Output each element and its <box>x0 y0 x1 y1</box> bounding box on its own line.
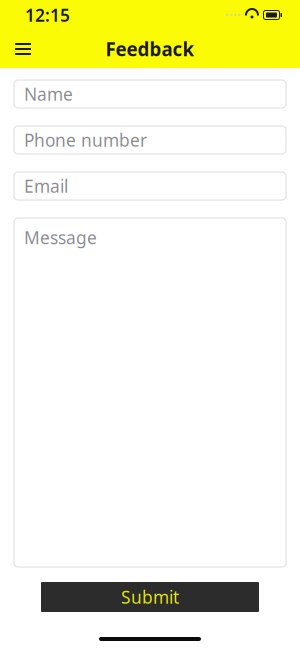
staticText: Phone number <box>24 128 147 151</box>
staticText: Message <box>24 226 97 249</box>
staticText: Feedback <box>105 37 194 61</box>
staticText: Name <box>24 82 73 105</box>
button[interactable]: Submit <box>41 582 259 612</box>
button[interactable]: Menu <box>6 32 40 66</box>
staticText: 12:15 <box>25 3 70 26</box>
staticText: Email <box>24 174 68 197</box>
staticText: Submit <box>121 585 179 608</box>
